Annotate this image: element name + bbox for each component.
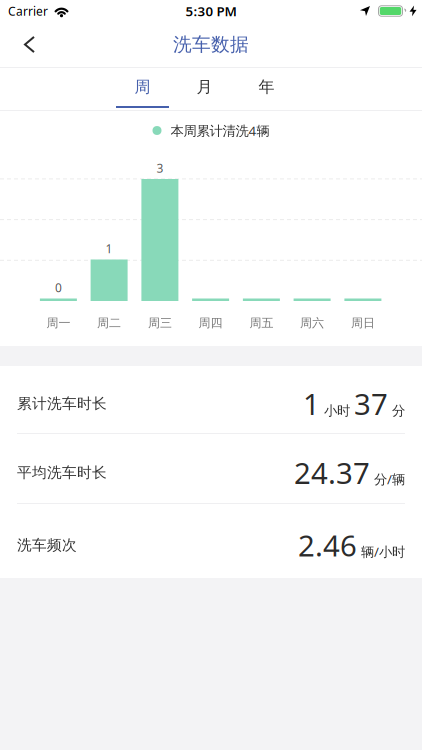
- staticText: 小时: [324, 403, 350, 419]
- button[interactable]: 月: [173, 68, 235, 110]
- staticText: 洗车频次: [17, 536, 77, 554]
- staticText: 3: [156, 160, 163, 176]
- staticText: 周五: [249, 316, 273, 330]
- staticText: 月: [196, 77, 212, 97]
- staticText: 分/辆: [374, 470, 405, 488]
- staticText: 周一: [46, 316, 70, 330]
- staticText: 周二: [97, 316, 121, 330]
- staticText: 周四: [199, 316, 223, 330]
- staticText: 平均洗车时长: [17, 463, 107, 481]
- staticText: 37: [354, 384, 388, 423]
- staticText: 2.46: [298, 525, 357, 564]
- staticText: 累计洗车时长: [17, 394, 107, 412]
- staticText: Carrier: [8, 3, 48, 19]
- staticText: 1: [303, 384, 320, 423]
- button[interactable]: 年: [235, 68, 297, 110]
- button[interactable]: [0, 24, 35, 65]
- staticText: 24.37: [294, 453, 370, 492]
- staticText: 辆/小时: [361, 543, 405, 560]
- staticText: 1: [106, 240, 113, 256]
- staticText: 5:30 PM: [185, 2, 236, 20]
- staticText: 0: [55, 279, 62, 295]
- staticText: 洗车数据: [173, 33, 249, 56]
- staticText: 本周累计清洗4辆: [170, 122, 269, 139]
- staticText: 周日: [351, 316, 375, 330]
- staticText: 年: [258, 77, 274, 97]
- staticText: 周六: [300, 316, 324, 330]
- staticText: 周三: [148, 316, 172, 330]
- staticText: 周: [134, 77, 150, 97]
- button[interactable]: 周: [111, 68, 173, 110]
- staticText: 分: [392, 403, 405, 419]
